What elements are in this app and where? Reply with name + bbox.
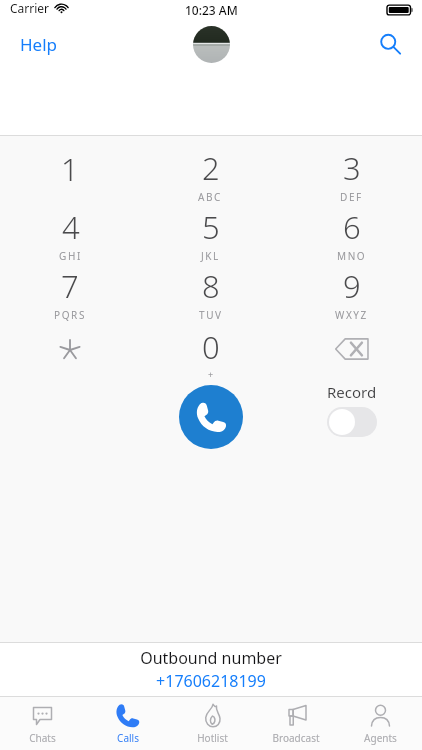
staticText: Carrier [10,0,50,16]
button[interactable]: 1 [0,146,140,205]
button[interactable]: 8 [140,264,281,323]
staticText: 1 [61,148,79,190]
button[interactable]: Search [370,24,410,64]
button[interactable]: Profile [193,26,230,63]
staticText: GHI [59,249,82,263]
staticText: Outbound number [140,647,282,669]
button[interactable]: 0 [140,323,281,382]
staticText: Record [327,382,377,402]
button[interactable]: 9 [281,264,422,323]
staticText: 2 [202,147,220,189]
staticText: +17606218199 [156,670,266,692]
staticText: Help [20,33,58,56]
staticText: Hotlist [197,731,228,745]
button[interactable]: Agents [338,697,422,750]
button[interactable]: Record toggle [327,407,377,437]
staticText: Broadcast [272,731,320,745]
staticText: 10:23 AM [185,2,238,18]
button[interactable]: Outbound number [0,643,422,696]
staticText: TUV [199,308,223,322]
button[interactable]: 6 [281,205,422,264]
staticText: MNO [337,249,367,263]
staticText: 7 [61,265,79,307]
staticText: 5 [202,206,220,248]
staticText: 0 [202,326,220,368]
staticText: Calls [117,731,139,745]
button[interactable]: Call [179,385,243,449]
staticText: 9 [343,265,361,307]
staticText: Agents [364,731,397,745]
staticText: JKL [201,249,220,263]
button[interactable]: 7 [0,264,140,323]
button[interactable]: Broadcast [254,697,338,750]
button[interactable]: Hotlist [170,697,254,750]
staticText: 3 [343,147,361,189]
staticText: Chats [29,731,56,745]
staticText: ABC [198,190,223,204]
button[interactable]: 5 [140,205,281,264]
staticText: WXYZ [335,308,368,322]
staticText: 8 [202,265,220,307]
button[interactable]: 4 [0,205,140,264]
button[interactable]: 2 [140,146,281,205]
staticText: + [208,368,215,380]
button[interactable]: Help [0,25,78,64]
button[interactable]: Backspace [281,323,422,382]
button[interactable]: Star [0,323,140,382]
staticText: PQRS [54,308,86,322]
button[interactable]: 3 [281,146,422,205]
staticText: 6 [343,206,361,248]
staticText: 4 [62,206,80,248]
button[interactable]: Chats [0,697,85,750]
button[interactable]: Calls [85,697,170,750]
staticText: DEF [340,190,363,204]
